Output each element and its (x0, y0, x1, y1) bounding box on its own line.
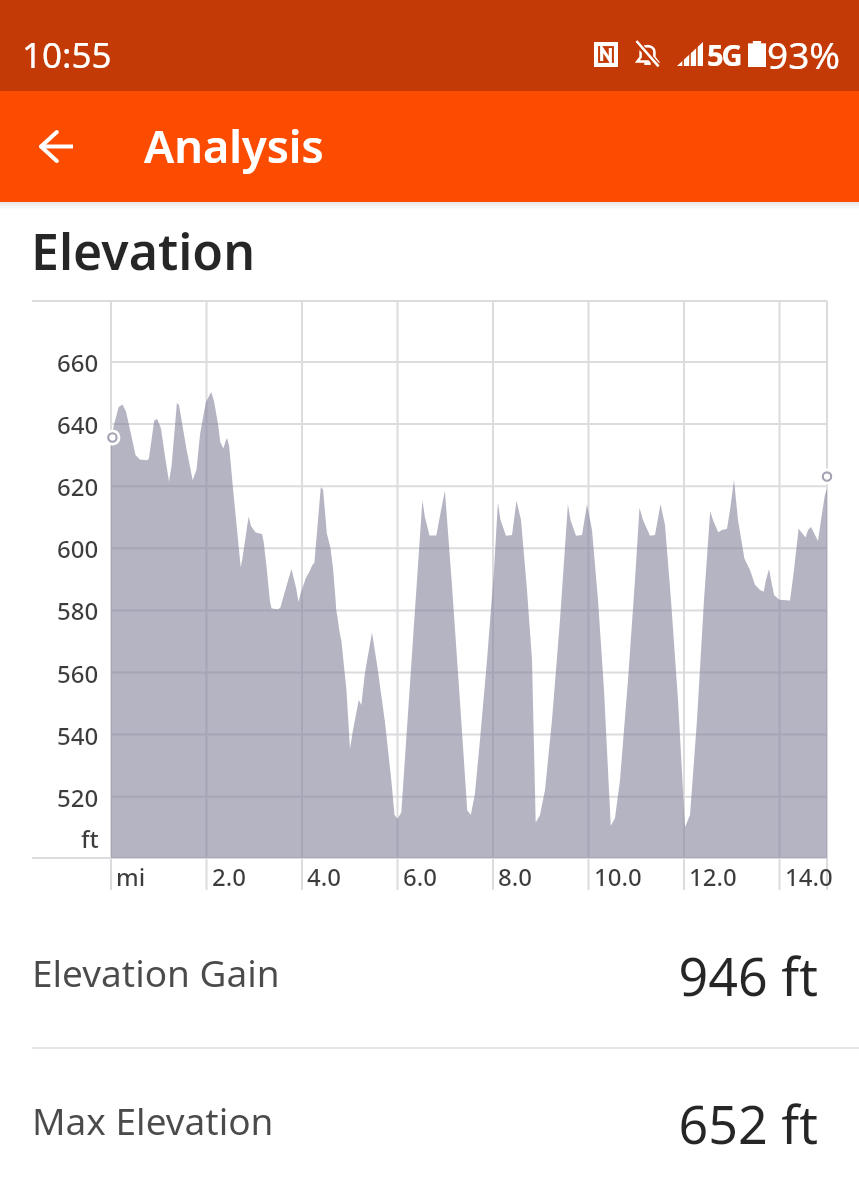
staticText: 8.0 (498, 860, 532, 893)
staticText: 12.0 (689, 860, 737, 893)
button[interactable]: Back (0, 91, 112, 202)
staticText: 540 (57, 719, 99, 752)
button[interactable]: Elevation Gain (0, 925, 859, 1023)
staticText: 520 (57, 781, 99, 814)
staticText: 4.0 (307, 860, 341, 893)
staticText: 652 ft (0, 1088, 818, 1159)
staticText: 93% (767, 29, 841, 79)
staticText: 660 (57, 346, 99, 379)
staticText: Elevation (31, 217, 256, 285)
staticText: 580 (57, 594, 99, 627)
staticText: 10.0 (594, 860, 642, 893)
staticText: Elevation Gain (32, 947, 280, 997)
button[interactable]: Max Elevation (0, 1073, 859, 1171)
staticText: Analysis (144, 115, 324, 176)
staticText: 600 (57, 532, 99, 565)
staticText: 2.0 (212, 860, 246, 893)
staticText: 620 (57, 470, 99, 503)
staticText: 640 (57, 408, 99, 441)
staticText: 14.0 (785, 860, 833, 893)
staticText: mi (116, 860, 146, 893)
staticText: 946 ft (0, 940, 818, 1011)
staticText: ft (81, 822, 99, 855)
staticText: 10:55 (22, 31, 112, 79)
staticText: 5G (707, 35, 741, 74)
staticText: 6.0 (403, 860, 437, 893)
staticText: Max Elevation (32, 1095, 274, 1145)
staticText: 560 (57, 657, 99, 690)
